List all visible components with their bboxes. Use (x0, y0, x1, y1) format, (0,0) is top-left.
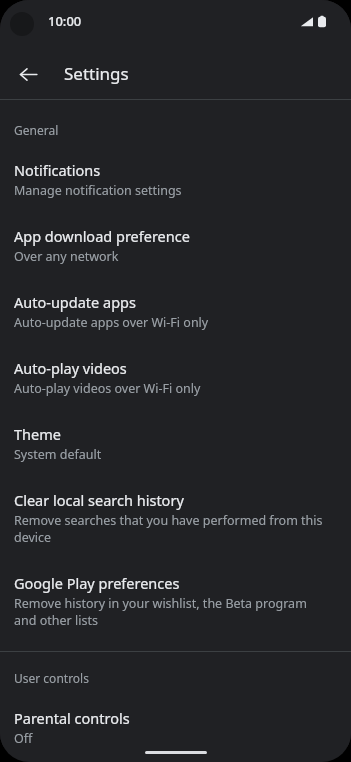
button[interactable]: Clear local search history (0, 463, 351, 546)
button[interactable]: Google Play preferences (0, 546, 351, 629)
button[interactable]: Auto-update apps (0, 265, 351, 331)
staticText: Auto-play videos over Wi-Fi only (14, 380, 201, 397)
button[interactable]: Auto-play videos (0, 331, 351, 397)
staticText: Google Play preferences (14, 573, 180, 593)
staticText: Off (14, 730, 33, 747)
staticText: General (14, 122, 59, 138)
staticText: Remove history in your wishlist, the Bet… (14, 595, 325, 629)
staticText: App download preference (14, 226, 190, 246)
button[interactable]: Notifications (0, 138, 351, 199)
button[interactable]: Parental controls (0, 686, 351, 747)
button[interactable]: Back (8, 54, 48, 94)
staticText: Settings (64, 62, 129, 85)
staticText: System default (14, 446, 102, 463)
staticText: Clear local search history (14, 490, 184, 510)
staticText: Parental controls (14, 708, 130, 728)
staticText: 10:00 (48, 12, 82, 30)
staticText: Auto-update apps over Wi-Fi only (14, 314, 209, 331)
staticText: Over any network (14, 248, 119, 265)
staticText: Auto-update apps (14, 292, 136, 312)
button[interactable]: App download preference (0, 199, 351, 265)
staticText: Notifications (14, 160, 101, 180)
staticText: Manage notification settings (14, 182, 182, 199)
staticText: Remove searches that you have performed … (14, 512, 325, 546)
staticText: Auto-play videos (14, 358, 127, 378)
button[interactable]: Theme (0, 397, 351, 463)
staticText: User controls (14, 670, 89, 686)
staticText: Theme (14, 424, 61, 444)
